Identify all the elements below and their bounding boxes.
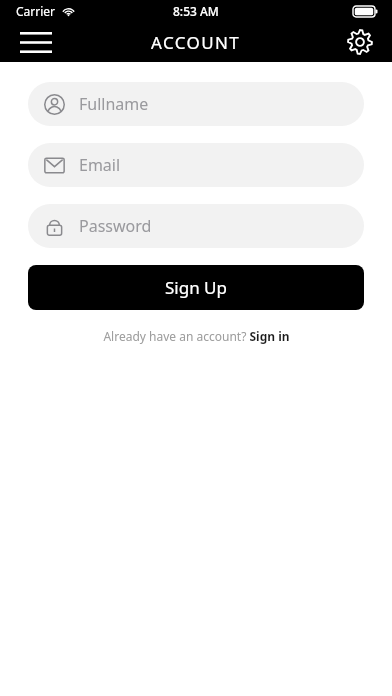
staticText: Sign Up	[165, 276, 227, 299]
button[interactable]: Settings	[340, 24, 380, 60]
staticText: Already have an account? Sign in	[103, 328, 290, 344]
button[interactable]: Already have an account? Sign in	[95, 326, 298, 346]
staticText: Carrier	[16, 3, 56, 19]
staticText: Email	[79, 154, 121, 176]
button[interactable]: Sign Up	[28, 265, 364, 310]
button[interactable]: Email	[28, 143, 364, 187]
button[interactable]: Password	[28, 204, 364, 248]
button[interactable]: Fullname	[28, 82, 364, 126]
staticText: 8:53 AM	[173, 3, 219, 19]
staticText: ACCOUNT	[151, 31, 241, 54]
staticText: Fullname	[79, 93, 149, 115]
button[interactable]: Menu	[14, 24, 58, 60]
staticText: Password	[79, 215, 152, 237]
